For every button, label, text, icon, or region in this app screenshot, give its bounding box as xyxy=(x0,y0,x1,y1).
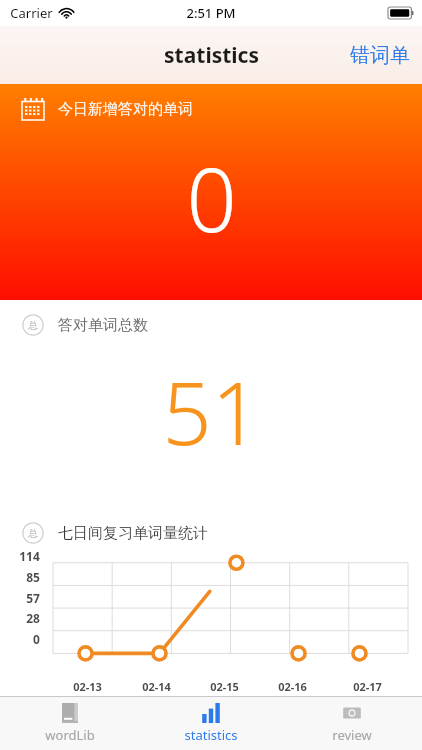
button[interactable]: Statistics xyxy=(140,697,281,750)
staticText: 85 xyxy=(26,569,40,585)
other: Word library xyxy=(60,703,80,723)
staticText: 总 xyxy=(28,319,38,332)
button[interactable]: Word library xyxy=(0,697,140,750)
staticText: 0 xyxy=(33,631,40,647)
staticText: 02-17 xyxy=(353,679,382,694)
staticText: wordLib xyxy=(45,726,95,744)
staticText: 0 xyxy=(186,138,237,258)
staticText: 七日间复习单词量统计 xyxy=(58,524,208,543)
staticText: 57 xyxy=(26,590,40,606)
staticText: Carrier xyxy=(10,4,53,22)
other: Review xyxy=(342,703,362,723)
button[interactable]: Review xyxy=(281,697,422,750)
button[interactable]: 总 xyxy=(0,300,422,510)
staticText: 2:51 PM xyxy=(186,4,236,22)
staticText: 28 xyxy=(26,610,40,626)
staticText: 114 xyxy=(19,548,40,564)
other: Statistics xyxy=(201,703,221,723)
staticText: statistics xyxy=(164,41,259,70)
staticText: 02-15 xyxy=(210,679,239,694)
staticText: 答对单词总数 xyxy=(58,316,148,335)
staticText: 02-14 xyxy=(142,679,171,694)
staticText: 02-16 xyxy=(278,679,307,694)
staticText: 错词单 xyxy=(350,43,410,68)
staticText: 02-13 xyxy=(73,679,102,694)
staticText: review xyxy=(332,726,372,744)
staticText: statistics xyxy=(184,726,238,744)
button[interactable]: 错词单 xyxy=(338,37,422,74)
staticText: 总 xyxy=(28,527,38,540)
staticText: 51 xyxy=(162,353,261,470)
button[interactable]: 今日新增答对的单词 xyxy=(0,84,422,300)
staticText: 今日新增答对的单词 xyxy=(58,100,193,119)
